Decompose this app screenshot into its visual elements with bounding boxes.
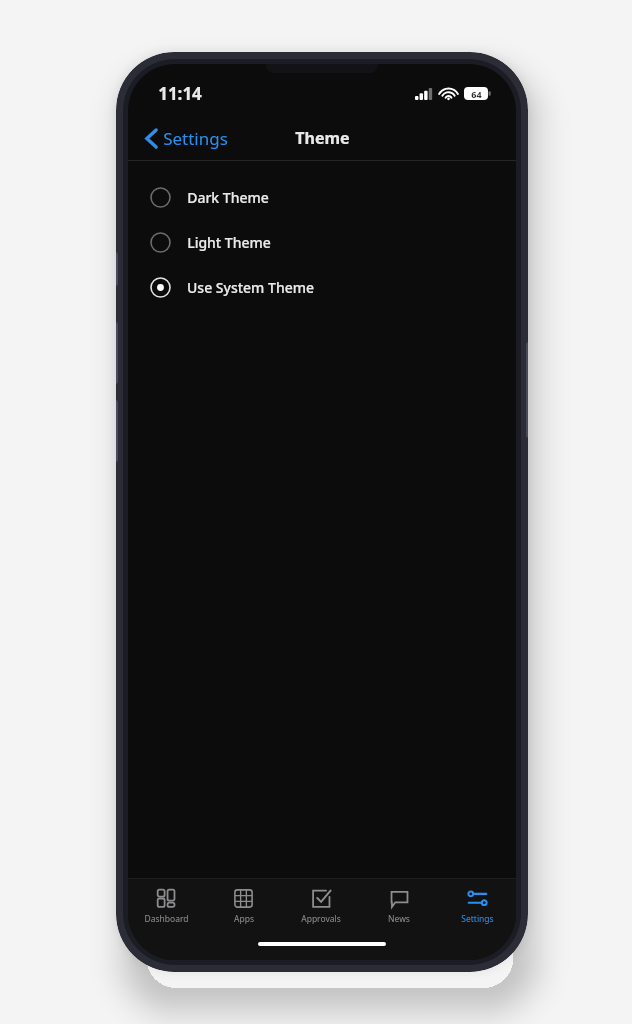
staticText: Light Theme (187, 233, 271, 252)
staticText: Approvals (301, 913, 341, 925)
staticText: Dark Theme (187, 188, 269, 207)
other: Dashboard (156, 888, 177, 909)
other: Apps (233, 888, 254, 909)
other: Settings (467, 888, 488, 909)
staticText: Dashboard (144, 913, 189, 925)
staticText: 64 (471, 88, 482, 100)
button[interactable]: Approvals (282, 879, 360, 934)
staticText: Settings (163, 127, 228, 150)
button[interactable]: News (360, 879, 438, 934)
staticText: Settings (461, 913, 494, 925)
other: News (389, 888, 410, 909)
other: Approvals (311, 888, 332, 909)
button[interactable]: Dark Theme (128, 175, 516, 220)
staticText: 11:14 (158, 82, 202, 105)
button[interactable]: Settings (438, 879, 516, 934)
staticText: Use System Theme (187, 278, 314, 297)
staticText: Apps (234, 913, 254, 925)
button[interactable]: Apps (205, 879, 282, 934)
staticText: News (388, 913, 410, 925)
button[interactable]: Settings (128, 123, 238, 154)
button[interactable]: Dashboard (128, 879, 205, 934)
button[interactable]: Light Theme (128, 220, 516, 265)
button[interactable]: Use System Theme (128, 265, 516, 310)
staticText: Theme (295, 127, 350, 149)
